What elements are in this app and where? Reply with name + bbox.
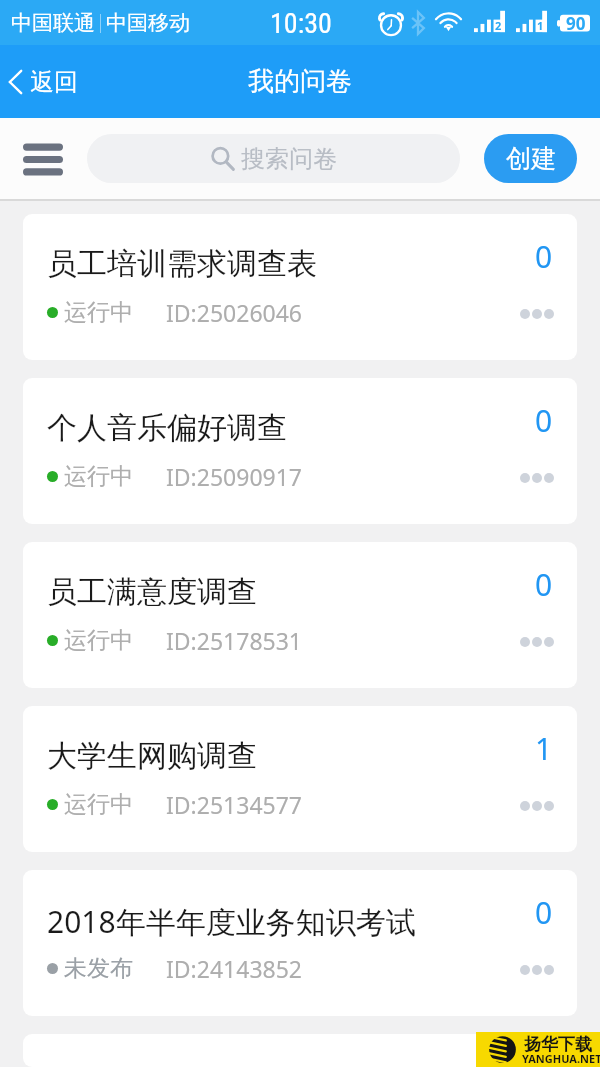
staticText: 90 (566, 12, 586, 35)
button[interactable]: More options (520, 309, 554, 319)
button[interactable]: More options (520, 801, 554, 811)
staticText: ID:25026046 (166, 297, 302, 328)
staticText: 运行中 (64, 790, 133, 819)
staticText: 2 (495, 18, 502, 33)
staticText: 0 (535, 1056, 553, 1067)
staticText: 1 (535, 728, 553, 769)
staticText: 中国移动 (106, 10, 190, 36)
staticText: 大学生网购调查 (47, 737, 257, 775)
button[interactable]: 返回 (0, 57, 92, 107)
button[interactable]: 创建 (484, 134, 577, 183)
button[interactable]: 大学生网购调查 (23, 706, 577, 852)
staticText: 员工培训需求调查表 (47, 245, 317, 283)
staticText: 运行中 (64, 462, 133, 491)
staticText: 运行中 (64, 626, 133, 655)
button[interactable]: 搜索问卷 (87, 134, 460, 183)
button[interactable]: More options (520, 965, 554, 975)
button[interactable]: 客户满意度调查问卷 (23, 1034, 577, 1067)
staticText: 2018年半年度业务知识考试 (47, 901, 416, 942)
staticText: 运行中 (64, 298, 133, 327)
staticText: 1 (537, 18, 544, 33)
staticText: 员工满意度调查 (47, 573, 257, 611)
button[interactable]: 个人音乐偏好调查 (23, 378, 577, 524)
staticText: YANGHUA.NET (522, 1051, 600, 1066)
staticText: ID:25178531 (166, 625, 302, 656)
staticText: 中国联通 (11, 10, 95, 36)
staticText: 0 (535, 400, 553, 441)
staticText: 未发布 (64, 954, 133, 983)
button[interactable]: More options (520, 637, 554, 647)
staticText: 返回 (30, 67, 78, 97)
button[interactable]: 员工满意度调查 (23, 542, 577, 688)
staticText: 我的问卷 (248, 65, 352, 98)
staticText: 0 (535, 236, 553, 277)
staticText: ID:25090917 (166, 461, 302, 492)
staticText: 创建 (506, 143, 556, 174)
staticText: 10:30 (270, 7, 332, 40)
staticText: ID:25134577 (166, 789, 302, 820)
staticText: 个人音乐偏好调查 (47, 409, 287, 447)
button[interactable]: 2018年半年度业务知识考试 (23, 870, 577, 1016)
staticText: 0 (535, 892, 553, 933)
button[interactable]: More options (520, 473, 554, 483)
button[interactable]: 员工培训需求调查表 (23, 214, 577, 360)
staticText: 0 (535, 564, 553, 605)
staticText: 扬华下载 (524, 1034, 592, 1055)
staticText: ID:24143852 (166, 953, 302, 984)
staticText: 搜索问卷 (241, 144, 337, 174)
button[interactable]: Menu (13, 130, 73, 188)
